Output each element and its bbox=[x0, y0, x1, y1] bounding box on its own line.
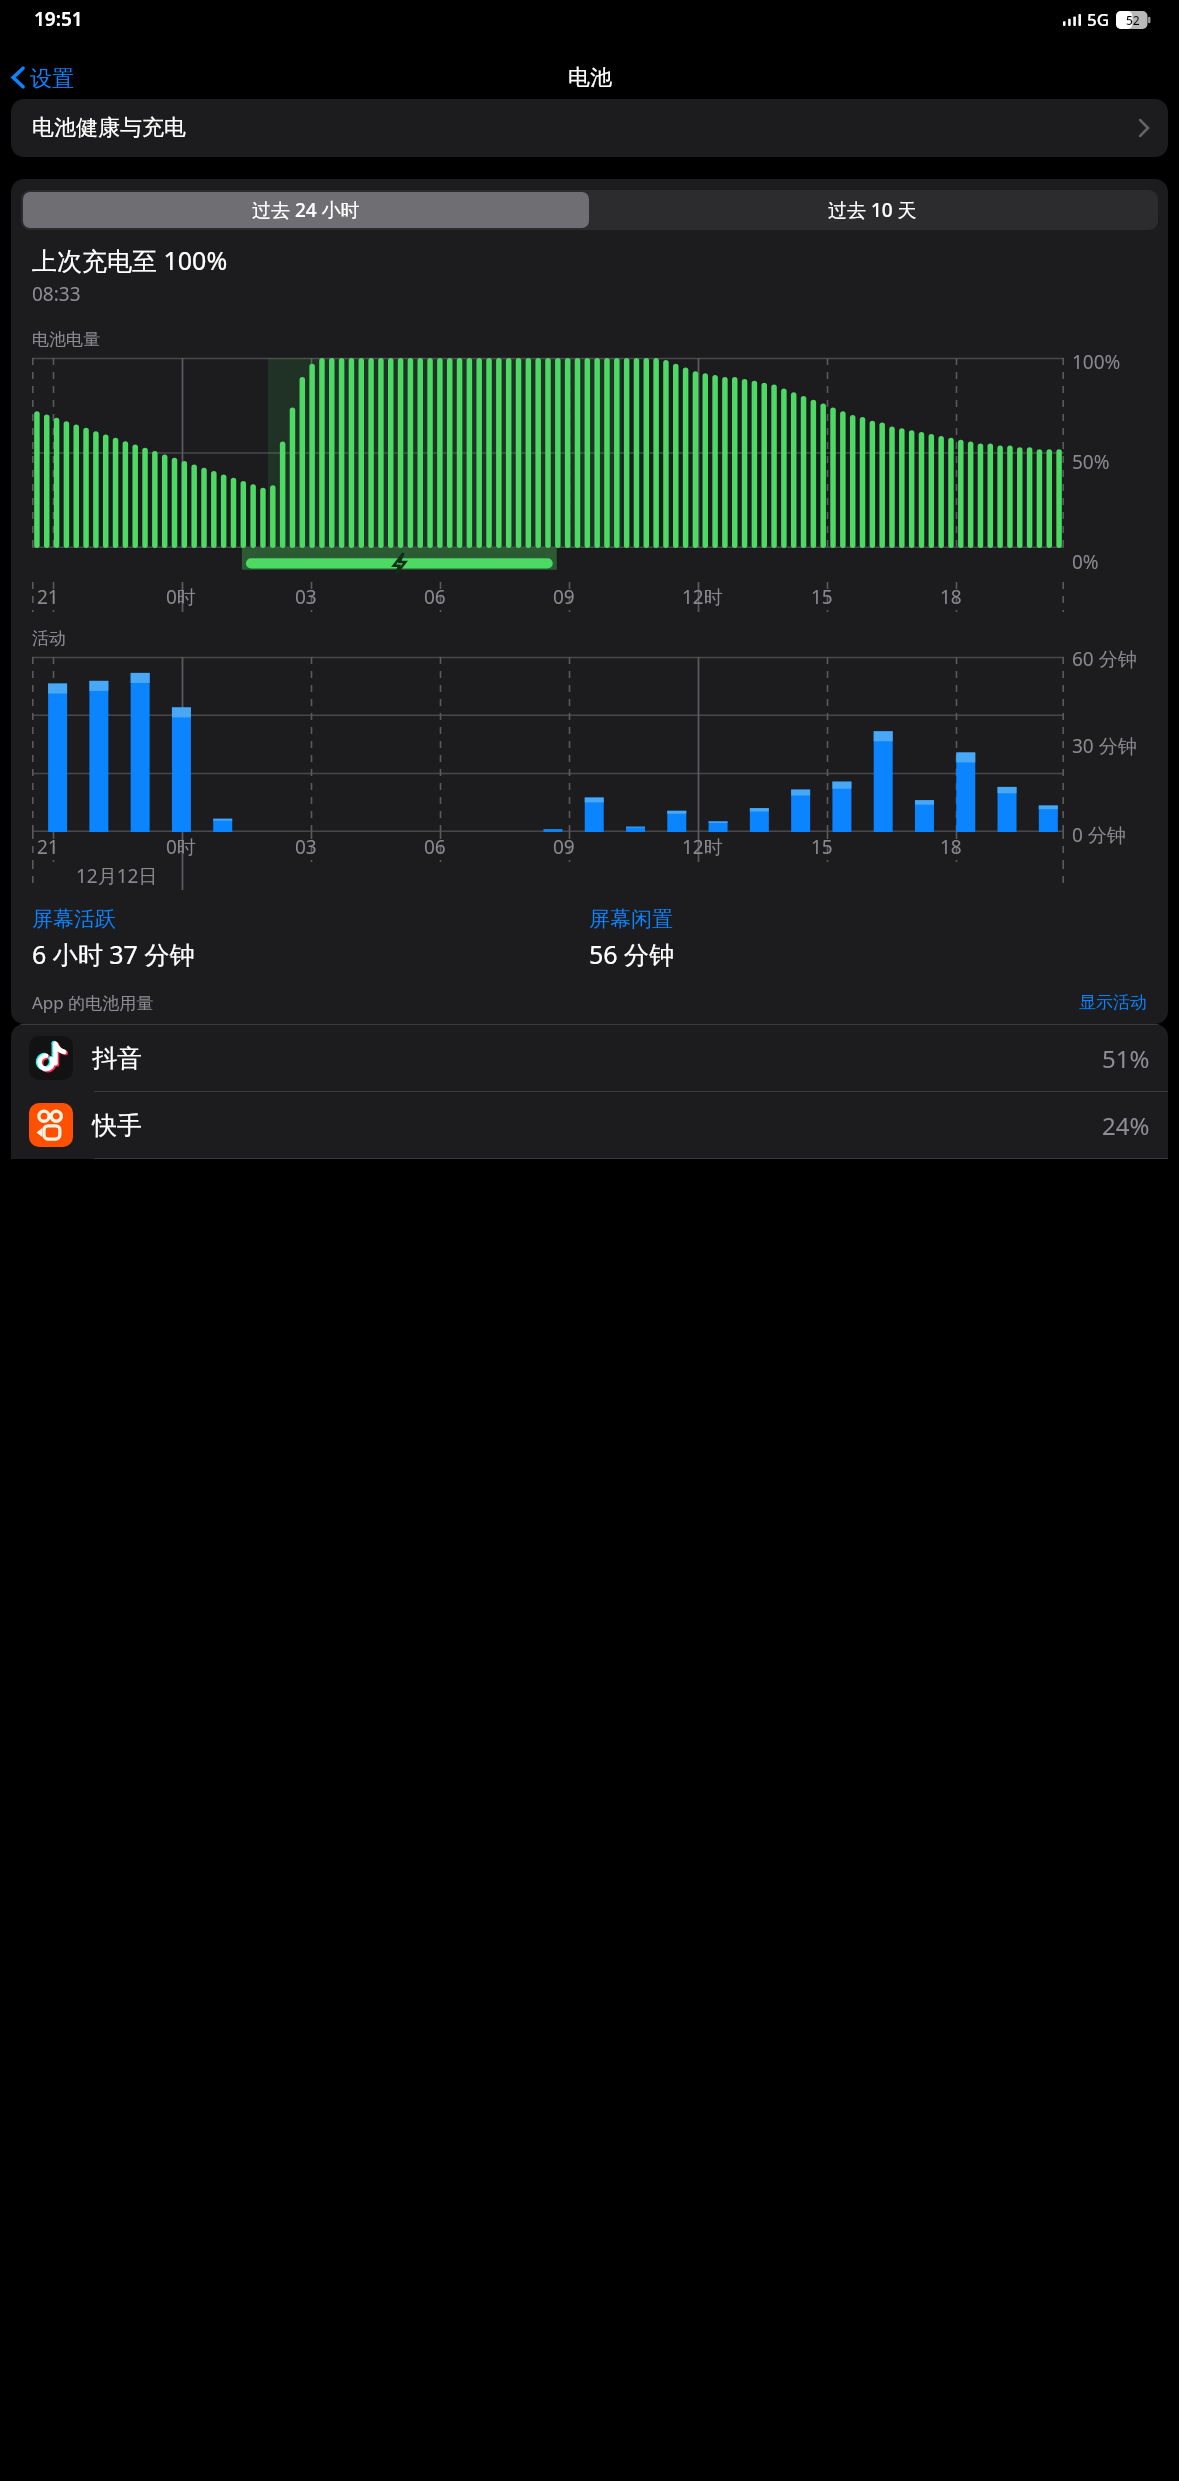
staticText: 19:51 bbox=[34, 6, 83, 32]
staticText: App 的电池用量 bbox=[32, 991, 154, 1014]
staticText: 0时 bbox=[166, 834, 196, 860]
staticText: 电池健康与充电 bbox=[32, 114, 186, 142]
button[interactable]: 过去 24 小时 bbox=[23, 192, 589, 228]
staticText: 过去 24 小时 bbox=[252, 197, 360, 223]
staticText: 24% bbox=[1102, 1109, 1150, 1142]
staticText: 0% bbox=[1072, 549, 1099, 575]
staticText: 06 bbox=[424, 584, 446, 610]
staticText: 活动 bbox=[32, 628, 66, 649]
staticText: 5G bbox=[1087, 8, 1110, 31]
staticText: 56 分钟 bbox=[589, 937, 675, 971]
button[interactable]: 抖音 bbox=[11, 1025, 1168, 1091]
staticText: 18 bbox=[940, 834, 962, 860]
staticText: 09 bbox=[553, 834, 575, 860]
staticText: 0时 bbox=[166, 584, 196, 610]
staticText: 03 bbox=[295, 584, 317, 610]
staticText: 12时 bbox=[682, 584, 723, 610]
staticText: 12月12日 bbox=[76, 863, 158, 889]
button[interactable]: 电池健康与充电 bbox=[11, 99, 1168, 157]
staticText: 21 bbox=[37, 834, 59, 860]
staticText: 08:33 bbox=[32, 281, 81, 307]
staticText: 03 bbox=[295, 834, 317, 860]
button[interactable]: 显示活动 bbox=[1079, 992, 1147, 1013]
staticText: 电池 bbox=[568, 64, 612, 92]
staticText: 18 bbox=[940, 584, 962, 610]
staticText: 52 bbox=[1126, 12, 1140, 28]
button[interactable]: 设置 bbox=[6, 61, 80, 94]
button[interactable]: 快手 bbox=[11, 1092, 1168, 1158]
staticText: 6 小时 37 分钟 bbox=[32, 937, 195, 971]
staticText: 30 分钟 bbox=[1072, 733, 1137, 759]
staticText: 51% bbox=[1102, 1042, 1150, 1075]
staticText: 上次充电至 100% bbox=[32, 243, 228, 277]
staticText: 抖音 bbox=[92, 1043, 142, 1074]
button[interactable]: 过去 10 天 bbox=[589, 192, 1156, 228]
staticText: 06 bbox=[424, 834, 446, 860]
staticText: 12时 bbox=[682, 834, 723, 860]
staticText: 15 bbox=[811, 834, 833, 860]
staticText: 屏幕活跃 bbox=[32, 906, 116, 932]
staticText: 设置 bbox=[30, 65, 74, 90]
staticText: 0 分钟 bbox=[1072, 822, 1126, 848]
staticText: 快手 bbox=[92, 1110, 142, 1141]
staticText: 15 bbox=[811, 584, 833, 610]
staticText: 屏幕闲置 bbox=[589, 906, 673, 932]
staticText: 电池电量 bbox=[32, 329, 100, 350]
staticText: 60 分钟 bbox=[1072, 646, 1137, 672]
staticText: 100% bbox=[1072, 349, 1121, 375]
staticText: 显示活动 bbox=[1079, 992, 1147, 1013]
staticText: 21 bbox=[37, 584, 59, 610]
staticText: 过去 10 天 bbox=[828, 197, 917, 223]
staticText: 09 bbox=[553, 584, 575, 610]
staticText: 50% bbox=[1072, 449, 1110, 475]
